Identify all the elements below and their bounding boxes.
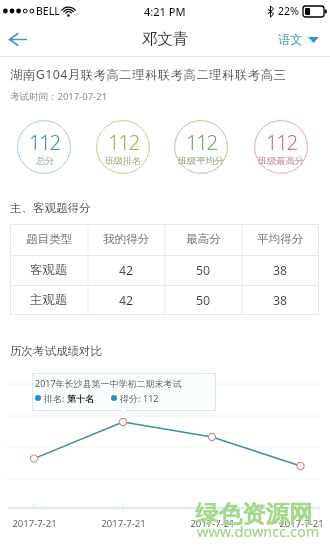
staticText: 第十名 xyxy=(67,393,94,404)
staticText: 112 xyxy=(108,128,139,156)
staticText: 平均得分 xyxy=(257,232,304,247)
staticText: 50 xyxy=(196,292,211,309)
staticText: 38 xyxy=(273,262,288,279)
staticText: 38 xyxy=(273,292,288,309)
staticText: 考试时间：2017-07-21 xyxy=(10,90,108,103)
staticText: 112 xyxy=(186,128,217,156)
staticText: 班级平均分 xyxy=(178,155,224,167)
button[interactable]: 112 xyxy=(17,120,71,174)
staticText: 42 xyxy=(119,262,134,279)
button[interactable]: 语文 xyxy=(277,27,320,52)
staticText: 排名: xyxy=(44,392,65,404)
staticText: 2017-7-21 xyxy=(12,517,57,530)
staticText: 2017-7-21 xyxy=(190,517,235,530)
staticText: 主、客观题得分 xyxy=(10,201,91,215)
button[interactable]: 112 xyxy=(96,120,150,174)
staticText: 22% xyxy=(278,4,299,18)
staticText: 我的得分 xyxy=(103,232,150,247)
staticText: 42 xyxy=(119,292,134,309)
staticText: BELL xyxy=(36,4,60,18)
staticText: 4:21 PM xyxy=(144,4,186,19)
staticText: 历次考试成绩对比 xyxy=(10,344,102,358)
staticText: 112 xyxy=(266,128,297,156)
staticText: 最高分 xyxy=(186,232,221,247)
button[interactable]: Back xyxy=(2,23,34,55)
staticText: 2017-7-21 xyxy=(279,517,324,530)
staticText: 语文 xyxy=(278,32,303,47)
staticText: 题目类型 xyxy=(26,232,73,247)
staticText: 绿色资源网 xyxy=(195,499,313,529)
staticText: www.downcc.com xyxy=(197,521,320,541)
staticText: 总分 xyxy=(36,155,54,167)
staticText: 客观题 xyxy=(30,262,68,278)
staticText: 50 xyxy=(196,262,211,279)
staticText: 邓文青 xyxy=(142,29,189,49)
button[interactable]: 112 xyxy=(254,120,308,174)
staticText: 主观题 xyxy=(30,292,68,308)
staticText: 2017年长沙县第一中学初二期末考试 xyxy=(35,377,182,389)
staticText: 湖南G104月联考高二理科联考高二理科联考高三 xyxy=(10,66,287,83)
staticText: 2017-7-21 xyxy=(101,517,146,530)
staticText: 班级最高分 xyxy=(258,155,304,167)
staticText: 112 xyxy=(29,128,60,156)
staticText: 112 xyxy=(143,392,159,404)
button[interactable]: 112 xyxy=(174,120,228,174)
staticText: 班级排名 xyxy=(105,155,141,167)
staticText: 得分: xyxy=(120,392,141,404)
